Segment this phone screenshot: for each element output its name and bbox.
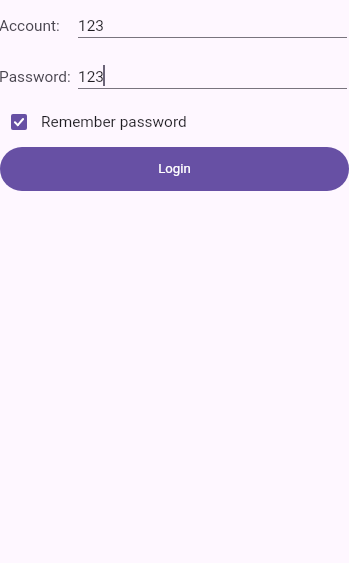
staticText: 123 [78,68,104,86]
staticText: 123 [78,17,104,35]
staticText: Account: [0,17,60,35]
button[interactable]: Login [0,147,349,191]
button[interactable]: Remember password checkbox, checked [0,109,349,135]
other: Remember password checkbox, checked [11,114,27,130]
staticText: Remember password [41,113,187,131]
staticText: Login [158,161,191,176]
staticText: Password: [0,68,71,86]
